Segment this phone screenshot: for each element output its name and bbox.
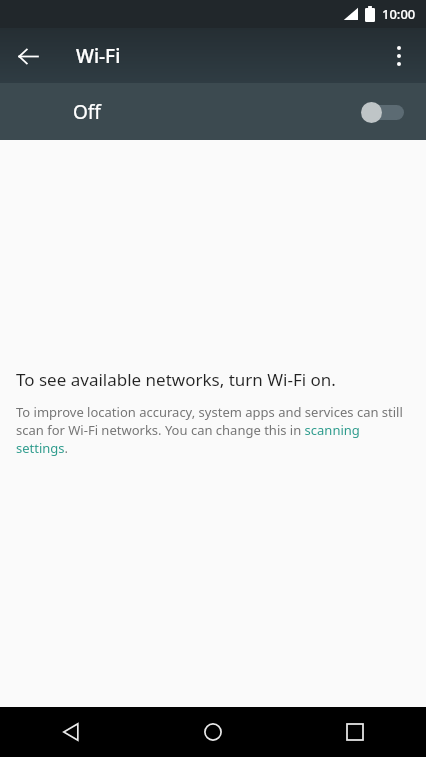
staticText: Wi-Fi bbox=[76, 43, 121, 69]
button[interactable]: Back bbox=[0, 707, 142, 757]
button[interactable]: More options bbox=[375, 32, 423, 80]
staticText: Off bbox=[73, 99, 101, 125]
button[interactable]: Navigate up bbox=[4, 32, 52, 80]
staticText: To improve location accuracy, system app… bbox=[16, 403, 410, 457]
other: Wi-Fi toggle, off bbox=[360, 99, 406, 125]
button[interactable]: Home bbox=[142, 707, 284, 757]
staticText: 10:00 bbox=[382, 5, 416, 23]
button[interactable]: Recents bbox=[284, 707, 426, 757]
button[interactable]: Off bbox=[0, 83, 426, 140]
staticText: To see available networks, turn Wi-Fi on… bbox=[16, 368, 336, 391]
